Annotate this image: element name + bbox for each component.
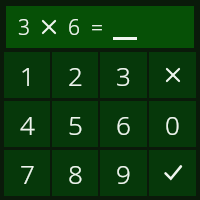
button[interactable]: 9 bbox=[100, 150, 147, 196]
staticText: 6 bbox=[68, 13, 80, 42]
staticText: 5 bbox=[68, 107, 83, 142]
button[interactable]: 2 bbox=[52, 52, 98, 98]
staticText: 2 bbox=[68, 58, 83, 93]
button[interactable]: Submit answer bbox=[149, 150, 196, 196]
staticText: 0 bbox=[165, 107, 180, 142]
staticText: 7 bbox=[20, 156, 35, 191]
button[interactable]: 3 bbox=[6, 6, 194, 48]
staticText: 3 bbox=[116, 58, 131, 93]
button[interactable]: 6 bbox=[100, 101, 147, 147]
button[interactable]: 5 bbox=[52, 101, 98, 147]
button[interactable]: 8 bbox=[52, 150, 98, 196]
button[interactable]: 7 bbox=[4, 150, 50, 196]
staticText: 4 bbox=[20, 107, 35, 142]
staticText: 8 bbox=[68, 156, 83, 191]
staticText: 6 bbox=[116, 107, 131, 142]
button[interactable]: 3 bbox=[100, 52, 147, 98]
staticText: = bbox=[91, 13, 103, 42]
staticText: 3 bbox=[18, 13, 30, 42]
button[interactable]: 1 bbox=[4, 52, 50, 98]
button[interactable]: 0 bbox=[149, 101, 196, 147]
button[interactable]: 4 bbox=[4, 101, 50, 147]
staticText: 9 bbox=[116, 156, 131, 191]
button[interactable]: Multiply bbox=[149, 52, 196, 98]
staticText: 1 bbox=[20, 58, 35, 93]
